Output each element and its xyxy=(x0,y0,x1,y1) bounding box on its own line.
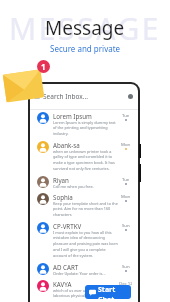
staticText: CP-VRTKV xyxy=(53,222,82,230)
staticText: Sophia xyxy=(53,193,73,201)
staticText: Abank-sa xyxy=(53,141,80,149)
button[interactable]: Abank-sa xyxy=(30,139,138,174)
staticText: Tue xyxy=(122,112,130,118)
staticText: Sun xyxy=(122,263,130,269)
button[interactable]: Menu xyxy=(30,84,138,109)
staticText: Message xyxy=(45,15,125,41)
staticText: Search Inbox... xyxy=(43,92,88,101)
button[interactable]: Sophia xyxy=(30,191,138,220)
button[interactable]: CP-VRTKV xyxy=(30,220,138,261)
button[interactable]: Lorem Ipsum xyxy=(30,110,138,139)
staticText: 1 xyxy=(41,61,46,72)
staticText: Start Chat xyxy=(98,285,127,299)
button[interactable]: Riyan xyxy=(30,174,138,191)
staticText: when an unknown printer took a galley of… xyxy=(53,149,118,172)
staticText: Keep your template short and to the poin… xyxy=(53,201,118,218)
staticText: Dec 12 xyxy=(119,280,132,286)
button[interactable]: AD CART xyxy=(30,261,138,278)
staticText: Call me when you free. xyxy=(53,184,94,189)
staticText: Order Update: Your order is... xyxy=(53,271,106,276)
other: Menu xyxy=(34,94,40,100)
staticText: MESSAGE xyxy=(9,8,162,49)
staticText: Secure and private xyxy=(50,43,121,54)
button[interactable]: KAVYA xyxy=(30,278,138,302)
staticText: KAVYA xyxy=(53,280,72,288)
staticText: Mon xyxy=(121,193,131,199)
staticText: AD CART xyxy=(53,263,79,271)
button[interactable]: Account xyxy=(128,94,133,99)
staticText: Lorem Ipsum is simply dummy text of the … xyxy=(53,120,118,137)
staticText: Sun xyxy=(122,222,130,228)
staticText: Tue xyxy=(122,176,130,182)
staticText: which of us ever undertakes laborious ph… xyxy=(53,288,118,300)
button[interactable]: Start Chat xyxy=(85,285,131,299)
staticText: Mon xyxy=(121,141,131,147)
staticText: Lorem Ipsum xyxy=(53,112,92,120)
staticText: I must explain to you how all this mista… xyxy=(53,230,118,259)
staticText: Riyan xyxy=(53,176,69,184)
